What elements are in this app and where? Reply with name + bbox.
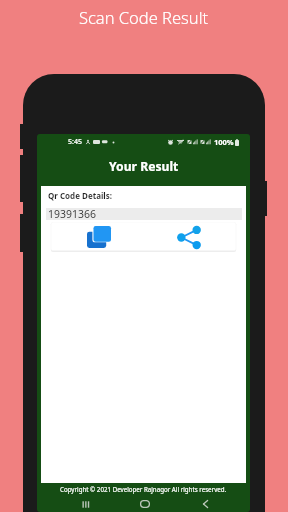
button[interactable]: 19391366 — [46, 208, 242, 220]
staticText: 19391366 — [48, 207, 97, 219]
staticText: Scan Code Result — [79, 6, 209, 28]
button[interactable]: Home — [135, 495, 155, 512]
button[interactable]: Recent apps — [75, 495, 95, 512]
staticText: Your Result — [109, 158, 179, 175]
staticText: Copyright © 2021 Developer Rajnagor All … — [60, 485, 227, 493]
button[interactable]: Back — [195, 495, 215, 512]
staticText: Qr Code Details: — [48, 190, 112, 201]
button[interactable]: Copy — [87, 225, 111, 249]
button[interactable]: Share — [177, 225, 201, 249]
staticText: 100% — [214, 137, 234, 147]
staticText: 5:45 — [68, 137, 82, 147]
